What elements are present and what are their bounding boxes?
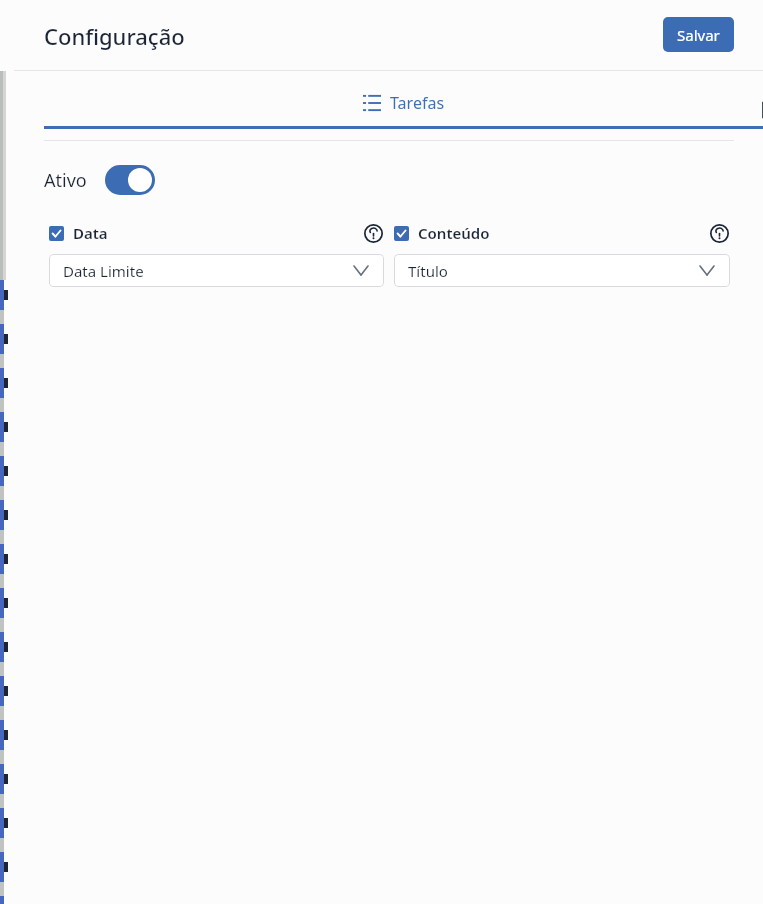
button[interactable]: Conteúdo <box>394 223 490 243</box>
button[interactable]: Data Limite <box>49 254 384 287</box>
button[interactable]: Tarefas <box>44 92 763 129</box>
staticText: Data <box>73 223 108 243</box>
staticText: Configuração <box>44 21 185 51</box>
staticText: Salvar <box>677 25 720 45</box>
staticText: Data Limite <box>63 261 144 281</box>
staticText: Tarefas <box>390 92 445 114</box>
staticText: Conteúdo <box>418 223 490 243</box>
staticText: Título <box>408 261 448 281</box>
button[interactable]: Salvar <box>663 17 734 52</box>
button[interactable]: Data <box>49 223 108 243</box>
button[interactable]: Título <box>394 254 730 287</box>
button[interactable]: Ajuda <box>362 222 384 244</box>
staticText: Ativo <box>44 168 87 193</box>
button[interactable]: Ativo <box>105 165 155 195</box>
button[interactable]: Ajuda <box>708 222 730 244</box>
